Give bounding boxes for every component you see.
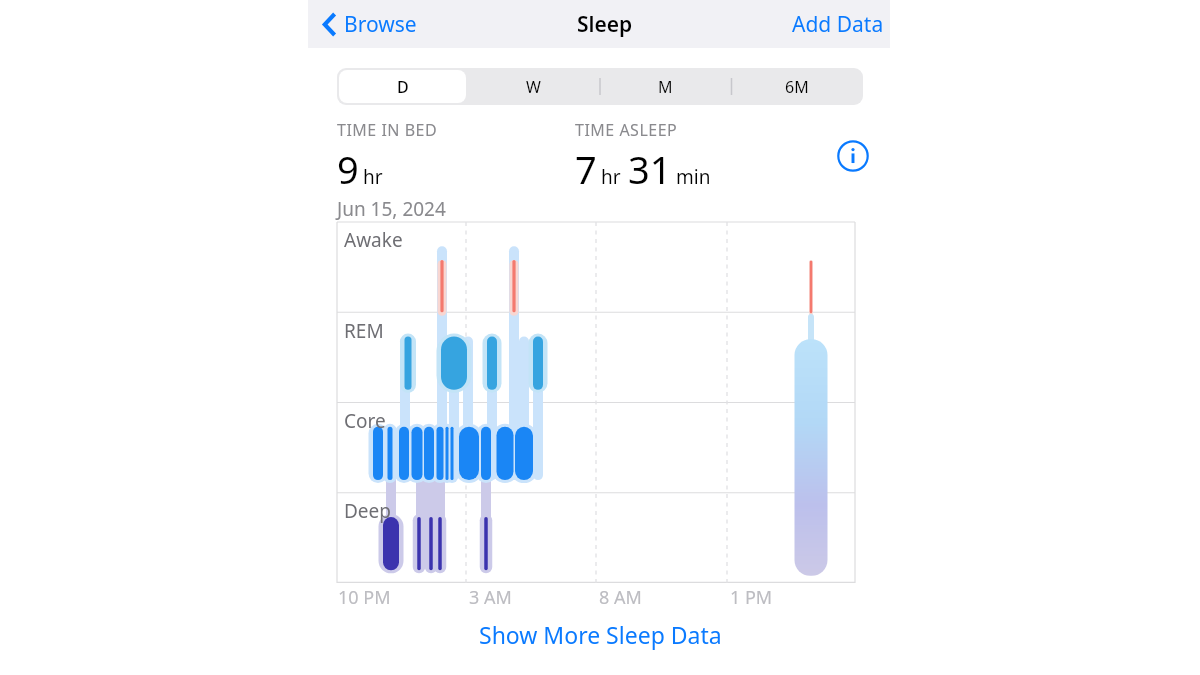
staticText: TIME ASLEEP [575, 119, 678, 141]
staticText: 8 AM [599, 585, 642, 609]
button[interactable]: 6M [733, 70, 861, 103]
staticText: D [397, 76, 409, 98]
staticText: 6M [785, 76, 809, 98]
button[interactable]: Information [836, 139, 870, 173]
button[interactable]: Show More Sleep Data [459, 609, 742, 660]
staticText: REM [344, 318, 384, 344]
staticText: hr [601, 164, 621, 190]
staticText: Browse [344, 10, 417, 39]
staticText: 31 [628, 143, 672, 195]
button[interactable]: M [601, 70, 729, 103]
staticText: Jun 15, 2024 [337, 196, 446, 222]
staticText: Awake [344, 227, 403, 253]
staticText: Sleep [577, 10, 633, 39]
button[interactable]: Add Data [786, 4, 890, 45]
button[interactable]: Browse [308, 6, 425, 43]
staticText: Show More Sleep Data [479, 619, 722, 650]
staticText: 3 AM [469, 585, 512, 609]
button[interactable]: D [339, 70, 466, 103]
staticText: W [526, 76, 541, 98]
staticText: Add Data [792, 10, 884, 39]
staticText: 1 PM [730, 585, 773, 609]
staticText: Core [344, 408, 386, 434]
staticText: 7 [575, 143, 597, 195]
staticText: Deep [344, 498, 391, 524]
button[interactable]: W [470, 70, 597, 103]
staticText: 10 PM [338, 585, 391, 609]
staticText: 9 [337, 143, 359, 195]
staticText: hr [363, 164, 383, 190]
staticText: min [676, 164, 711, 190]
staticText: TIME IN BED [337, 119, 438, 141]
staticText: M [658, 76, 673, 98]
